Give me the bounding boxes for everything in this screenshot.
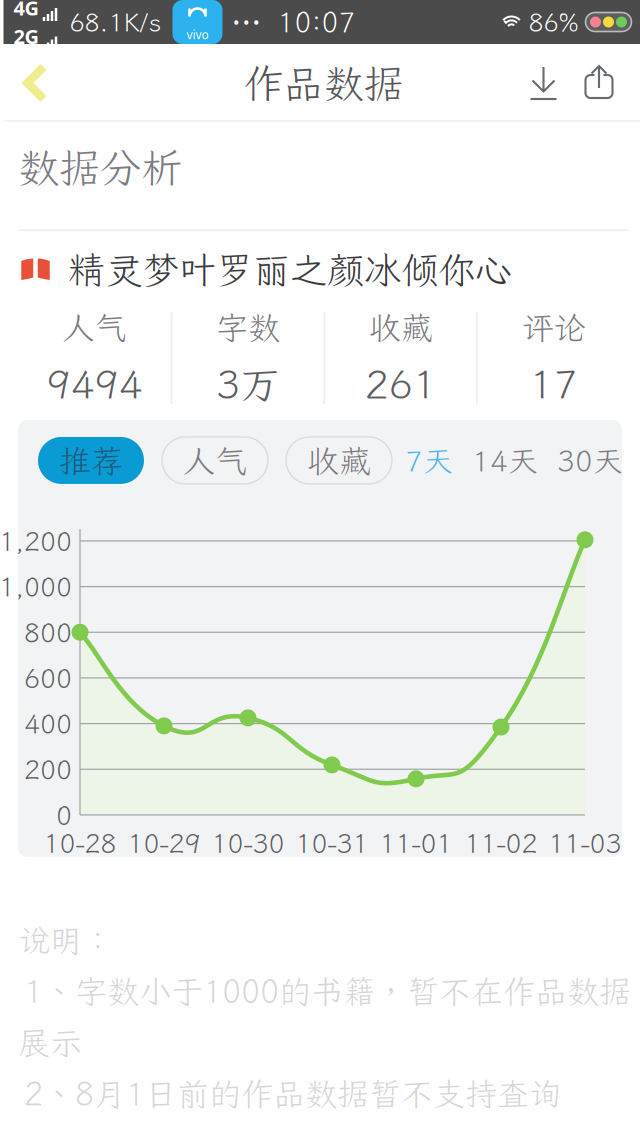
button[interactable]: Download [515, 44, 571, 122]
button[interactable]: 收藏 [286, 437, 392, 484]
staticText: 14天 [472, 441, 537, 480]
button[interactable]: 7天 [405, 441, 452, 480]
staticText: 10-31 [295, 825, 368, 860]
staticText: 86% [528, 5, 578, 39]
staticText: 作品数据 [243, 57, 403, 109]
staticText: vivo [186, 26, 208, 42]
staticText: 17 [529, 357, 577, 410]
staticText: 收藏 [307, 439, 371, 481]
staticText: 人气 [183, 439, 247, 481]
staticText: 600 [24, 660, 72, 695]
staticText: 9494 [46, 357, 142, 410]
staticText: 11-02 [464, 825, 537, 860]
staticText: 精灵梦叶罗丽之颜冰倾你心 [68, 245, 512, 294]
staticText: 10-29 [127, 825, 200, 860]
staticText: 人气 [62, 306, 126, 348]
staticText: 收藏 [369, 306, 433, 348]
button[interactable]: 人气 [162, 437, 268, 484]
button[interactable]: Share [571, 44, 627, 122]
staticText: 0 [56, 797, 72, 832]
staticText: 11-03 [548, 825, 621, 860]
staticText: 400 [24, 706, 72, 741]
staticText: 1,000 [0, 569, 72, 604]
staticText: 说明： [18, 919, 114, 961]
staticText: 7天 [405, 441, 452, 480]
staticText: 11-01 [379, 825, 452, 860]
staticText: 10-30 [211, 825, 284, 860]
staticText: 1、字数小于1000的书籍，暂不在作品数据 [24, 970, 631, 1012]
staticText: • • • [233, 12, 259, 32]
staticText: 3万 [216, 357, 280, 410]
staticText: 数据分析 [18, 140, 182, 194]
staticText: 展示 [18, 1021, 82, 1063]
staticText: 261 [365, 357, 437, 410]
staticText: 1,200 [0, 523, 72, 558]
staticText: 200 [24, 752, 72, 787]
button[interactable]: 30天 [557, 441, 622, 480]
staticText: 800 [24, 615, 72, 650]
staticText: 4G [13, 0, 38, 21]
button[interactable]: Back [3, 44, 67, 122]
staticText: 2、8月1日前的作品数据暂不支持查询 [24, 1072, 561, 1114]
staticText: 30天 [557, 441, 622, 480]
staticText: 字数 [216, 306, 280, 348]
button[interactable]: 推荐 [38, 437, 144, 484]
staticText: 推荐 [59, 439, 123, 481]
staticText: 2G [13, 23, 38, 50]
staticText: 10:07 [277, 4, 355, 40]
staticText: 评论 [521, 306, 585, 348]
staticText: 10-28 [43, 825, 116, 860]
staticText: 68.1K/s [69, 5, 161, 39]
button[interactable]: 14天 [472, 441, 537, 480]
